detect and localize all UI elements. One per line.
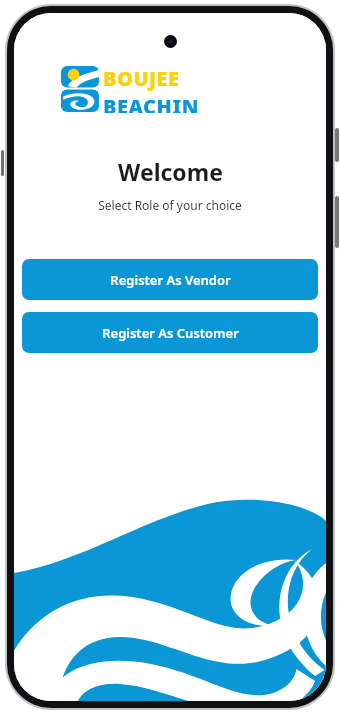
button[interactable]: Register As Vendor — [22, 259, 318, 300]
staticText: Register As Vendor — [110, 271, 231, 289]
staticText: BEACHIN — [103, 93, 199, 113]
staticText: Select Role of your choice — [98, 197, 242, 213]
staticText: BOUJEE — [103, 65, 180, 92]
button[interactable]: Register As Customer — [22, 312, 318, 353]
staticText: Welcome — [118, 156, 223, 187]
staticText: Register As Customer — [102, 324, 239, 342]
